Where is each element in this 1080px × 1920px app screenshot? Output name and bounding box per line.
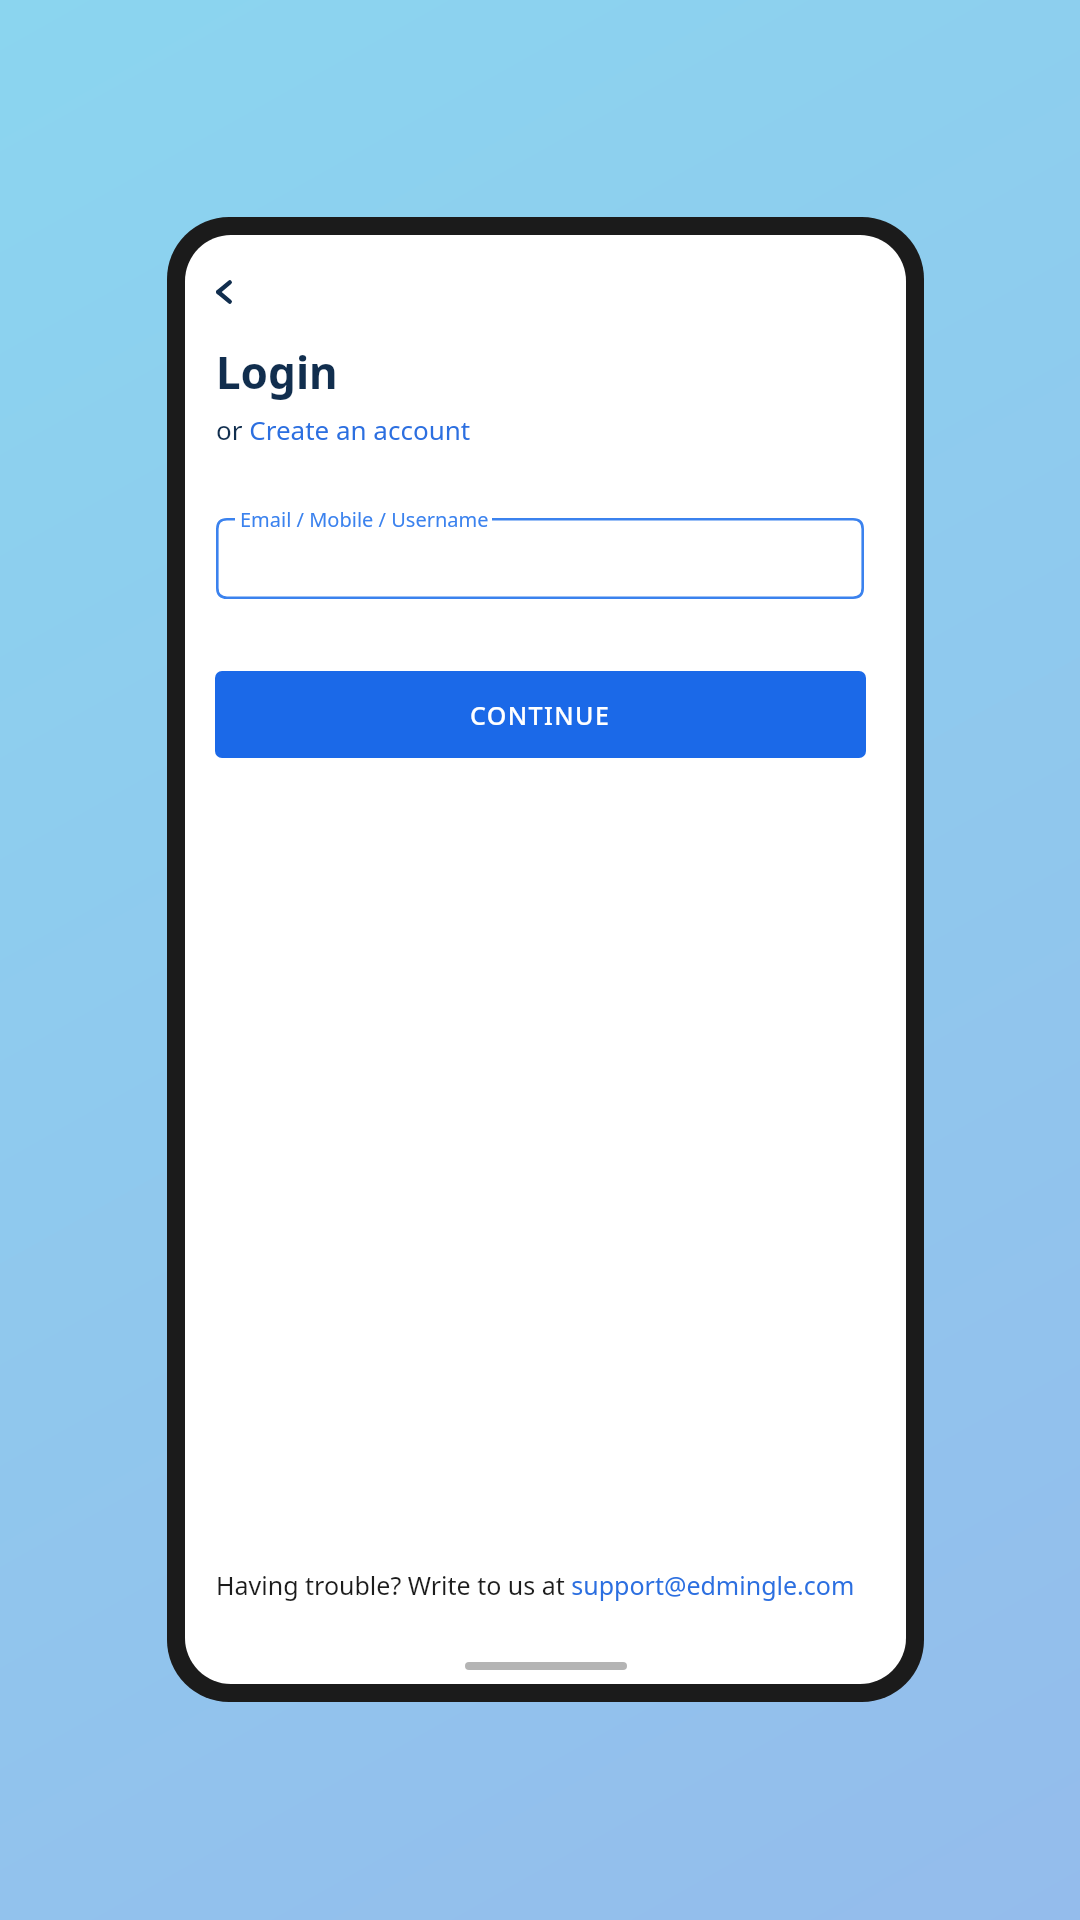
staticText: CONTINUE: [470, 698, 611, 732]
button[interactable]: Having trouble? Write to us at support@e…: [216, 1568, 855, 1602]
button[interactable]: CONTINUE: [215, 671, 866, 758]
button[interactable]: or Create an account: [216, 412, 471, 447]
staticText: Email / Mobile / Username: [240, 506, 489, 533]
staticText: or Create an account: [216, 412, 471, 447]
staticText: Having trouble? Write to us at support@e…: [216, 1568, 855, 1602]
button[interactable]: Email / Mobile / Username: [216, 518, 864, 599]
staticText: Login: [216, 342, 338, 402]
button[interactable]: Back: [193, 261, 255, 323]
